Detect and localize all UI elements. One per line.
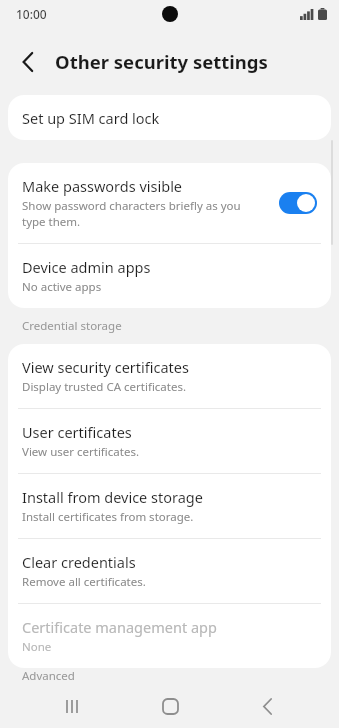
staticText: Remove all certificates. bbox=[22, 574, 146, 590]
staticText: Credential storage bbox=[22, 318, 122, 334]
staticText: Install certificates from storage. bbox=[22, 509, 194, 525]
staticText: 10:00 bbox=[16, 6, 47, 22]
button[interactable]: Make passwords visible bbox=[8, 163, 331, 243]
button[interactable]: Back bbox=[12, 46, 44, 78]
staticText: Device admin apps bbox=[22, 257, 151, 277]
button[interactable]: Make passwords visible toggle bbox=[279, 192, 317, 214]
staticText: Set up SIM card lock bbox=[22, 108, 160, 128]
button[interactable]: Install from device storage bbox=[8, 474, 331, 538]
staticText: Advanced bbox=[22, 668, 75, 684]
button[interactable]: Set up SIM card lock bbox=[8, 95, 331, 140]
staticText: View user certificates. bbox=[22, 444, 139, 460]
button[interactable]: Clear credentials bbox=[8, 539, 331, 603]
button[interactable]: View security certificates bbox=[8, 344, 331, 408]
staticText: Show password characters briefly as you … bbox=[22, 198, 265, 230]
staticText: Make passwords visible bbox=[22, 176, 183, 196]
staticText: Install from device storage bbox=[22, 487, 203, 507]
button[interactable]: Recents bbox=[46, 684, 98, 728]
staticText: Display trusted CA certificates. bbox=[22, 379, 187, 395]
staticText: No active apps bbox=[22, 279, 102, 295]
button[interactable]: Certificate management app bbox=[8, 604, 331, 668]
staticText: User certificates bbox=[22, 422, 132, 442]
staticText: Other security settings bbox=[55, 49, 268, 74]
staticText: Clear credentials bbox=[22, 552, 136, 572]
staticText: None bbox=[22, 639, 52, 655]
staticText: Certificate management app bbox=[22, 617, 217, 637]
button[interactable]: Back bbox=[241, 684, 293, 728]
button[interactable]: Home bbox=[144, 684, 196, 728]
staticText: View security certificates bbox=[22, 357, 189, 377]
button[interactable]: User certificates bbox=[8, 409, 331, 473]
button[interactable]: Device admin apps bbox=[8, 244, 331, 308]
